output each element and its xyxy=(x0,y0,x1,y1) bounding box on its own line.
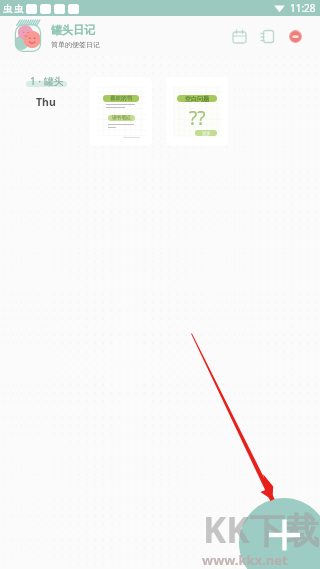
staticText: 简单的便签日记 xyxy=(51,40,100,49)
staticText: 罐头日记 xyxy=(51,23,95,37)
staticText: 更多 xyxy=(202,131,211,136)
staticText: KK下载 xyxy=(203,506,320,554)
button[interactable]: 喜欢的书 xyxy=(90,77,152,146)
staticText: 空白问题 xyxy=(185,95,209,102)
staticText: Thu xyxy=(36,95,56,109)
staticText: www.kkx.net xyxy=(202,551,288,569)
staticText: 1 · 罐头 xyxy=(30,74,64,88)
button[interactable]: 空白问题 xyxy=(166,77,228,146)
staticText: 虫 xyxy=(3,3,12,14)
button[interactable]: Calendar xyxy=(226,23,252,49)
staticText: 喜欢的书 xyxy=(110,95,132,102)
staticText: 11:28 xyxy=(290,1,316,15)
staticText: 虫 xyxy=(14,3,23,14)
button[interactable]: Notebook xyxy=(254,23,280,49)
staticText: 读书笔记 xyxy=(112,115,131,121)
button[interactable]: New note xyxy=(239,498,320,569)
staticText: ?? xyxy=(189,105,206,131)
button[interactable]: Profile xyxy=(282,23,308,49)
